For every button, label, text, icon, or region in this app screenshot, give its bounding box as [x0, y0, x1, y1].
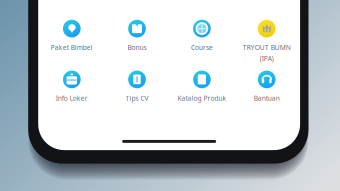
button[interactable]: Bonus: [105, 20, 169, 60]
button[interactable]: Info Loker: [40, 70, 104, 111]
staticText: TRYOUT BUMN: [243, 43, 291, 52]
button[interactable]: Bantuan: [235, 70, 299, 111]
button[interactable]: TRYOUT BUMN: [235, 20, 299, 60]
staticText: Paket Bimbel: [51, 43, 93, 52]
staticText: Katalog Produk: [177, 94, 226, 103]
staticText: Bantuan: [254, 94, 280, 103]
staticText: Info Loker: [56, 94, 88, 103]
staticText: (IPA): [260, 54, 274, 63]
staticText: Course: [191, 43, 213, 52]
staticText: Tips CV: [125, 94, 148, 103]
button[interactable]: Katalog Produk: [170, 70, 234, 111]
button[interactable]: Tips CV: [105, 70, 169, 111]
staticText: Bonus: [127, 43, 146, 52]
button[interactable]: Paket Bimbel: [40, 20, 104, 60]
button[interactable]: Course: [170, 20, 234, 60]
